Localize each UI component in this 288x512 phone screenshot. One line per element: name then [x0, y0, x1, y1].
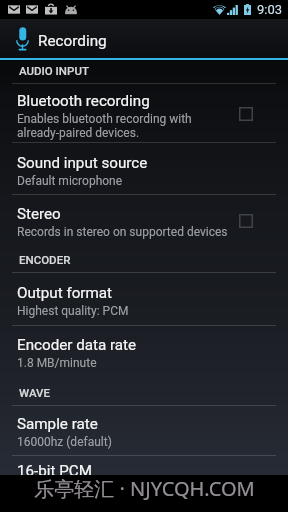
staticText: WAVE [19, 387, 51, 400]
button[interactable]: Sound input source [0, 143, 288, 195]
button[interactable]: Bluetooth recording [0, 84, 288, 143]
staticText: Enables bluetooth recording with already… [17, 112, 197, 140]
staticText: Recording [38, 33, 107, 50]
staticText: Output format [17, 285, 113, 302]
button[interactable]: Output format [0, 273, 288, 326]
staticText: 乐亭轻汇 · NJYCQH.COM [34, 477, 255, 502]
staticText: Highest quality: PCM [17, 304, 129, 318]
staticText: Sound input source [17, 155, 148, 172]
staticText: Default microphone [17, 174, 123, 188]
staticText: ENCODER [19, 254, 71, 267]
button[interactable]: Encoder data rate [0, 326, 288, 379]
staticText: AUDIO INPUT [19, 65, 89, 78]
staticText: Records in stereo on supported devices [17, 225, 228, 239]
button[interactable]: Toggle checkbox [239, 107, 253, 121]
staticText: Sample rate [17, 416, 98, 433]
button[interactable]: Stereo [0, 195, 288, 246]
button[interactable]: Toggle checkbox [239, 214, 253, 228]
staticText: Encoder data rate [17, 337, 137, 354]
staticText: 9:03 [257, 3, 283, 17]
button[interactable]: Sample rate [0, 406, 288, 456]
staticText: 1.8 MB/minute [17, 356, 97, 370]
button[interactable]: 16-bit PCM [0, 456, 288, 475]
staticText: Bluetooth recording [17, 93, 150, 110]
staticText: 16000hz (default) [17, 435, 112, 449]
staticText: Stereo [17, 206, 61, 223]
staticText: 16-bit PCM [17, 463, 92, 475]
